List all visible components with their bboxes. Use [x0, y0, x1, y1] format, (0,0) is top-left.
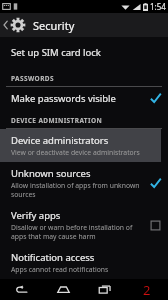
staticText: 2: [143, 281, 151, 299]
button[interactable]: Recent apps: [84, 279, 126, 300]
staticText: Notification access: [11, 251, 95, 264]
staticText: Set up SIM card lock: [11, 46, 101, 59]
button[interactable]: Device administrators: [0, 129, 161, 162]
staticText: DEVICE ADMINISTRATION: [11, 116, 103, 125]
staticText: 1:54: [150, 1, 166, 12]
other: Unchecked: [150, 220, 161, 231]
staticText: Allow installation of apps from unknown …: [11, 181, 144, 199]
button[interactable]: Set up SIM card lock: [0, 37, 168, 68]
staticText: Make passwords visible: [11, 92, 116, 105]
button[interactable]: Up, Security: [0, 13, 168, 37]
button[interactable]: Verify apps: [0, 204, 168, 246]
staticText: Disallow or warn before installation of …: [11, 223, 144, 241]
button[interactable]: Home: [42, 279, 84, 300]
staticText: Security: [33, 18, 75, 33]
other: Checked: [150, 178, 161, 189]
button[interactable]: Make passwords visible: [0, 87, 168, 110]
staticText: Unknown sources: [11, 167, 91, 180]
button[interactable]: Unknown sources: [0, 162, 168, 204]
other: Checked: [150, 93, 161, 104]
staticText: Apps cannot read notifications: [11, 265, 109, 274]
staticText: View or deactivate device administrators: [11, 148, 140, 157]
staticText: Device administrators: [11, 134, 109, 147]
button[interactable]: Notification access: [0, 246, 168, 279]
button[interactable]: Back: [0, 279, 42, 300]
staticText: Verify apps: [11, 209, 61, 222]
staticText: PASSWORDS: [11, 74, 54, 83]
